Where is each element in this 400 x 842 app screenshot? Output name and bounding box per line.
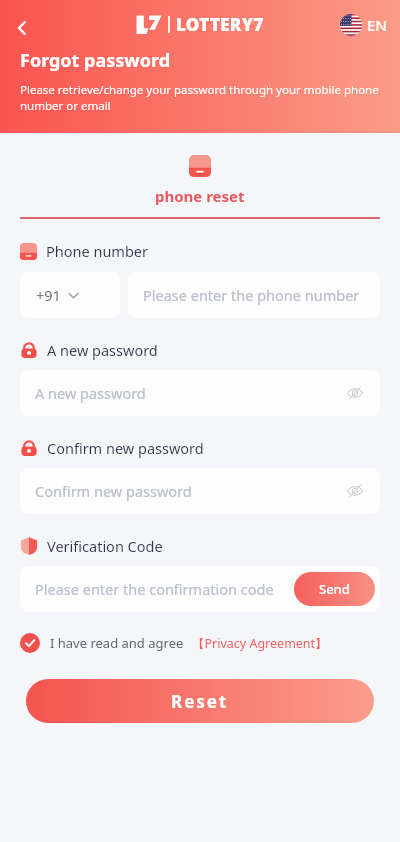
staticText: I have read and agree bbox=[50, 634, 184, 652]
button[interactable]: +91 bbox=[20, 272, 120, 318]
staticText: Please enter the phone number bbox=[143, 285, 360, 305]
button[interactable]: EN bbox=[337, 12, 390, 38]
staticText: EN bbox=[367, 15, 387, 35]
staticText: +91 bbox=[36, 285, 61, 305]
staticText: Confirm new password bbox=[47, 438, 204, 458]
button[interactable]: phone reset bbox=[131, 153, 269, 208]
button[interactable]: Reset bbox=[26, 679, 374, 723]
staticText: LOTTERY7 bbox=[176, 13, 264, 36]
staticText: Please enter the confirmation code bbox=[35, 579, 294, 599]
staticText: Confirm new password bbox=[35, 481, 344, 501]
button[interactable]: A new password bbox=[20, 370, 380, 416]
button[interactable]: Send bbox=[294, 572, 375, 606]
staticText: Phone number bbox=[46, 241, 148, 261]
button[interactable]: 【Privacy Agreement】 bbox=[192, 635, 328, 652]
button[interactable]: Please enter the confirmation code bbox=[20, 566, 380, 612]
button[interactable]: Confirm new password bbox=[20, 468, 380, 514]
staticText: Please retrieve/change your password thr… bbox=[20, 82, 379, 113]
staticText: Verification Code bbox=[47, 536, 163, 556]
staticText: Send bbox=[319, 580, 350, 598]
button[interactable]: I have read and agree bbox=[20, 631, 328, 655]
staticText: phone reset bbox=[155, 186, 245, 206]
staticText: Forgot password bbox=[20, 48, 171, 73]
button[interactable]: Toggle password visibility bbox=[344, 480, 366, 502]
button[interactable]: Please enter the phone number bbox=[128, 272, 380, 318]
button[interactable]: Toggle password visibility bbox=[344, 382, 366, 404]
staticText: A new password bbox=[47, 340, 158, 360]
staticText: Reset bbox=[171, 690, 229, 713]
button[interactable]: Back bbox=[4, 10, 40, 46]
staticText: A new password bbox=[35, 383, 344, 403]
